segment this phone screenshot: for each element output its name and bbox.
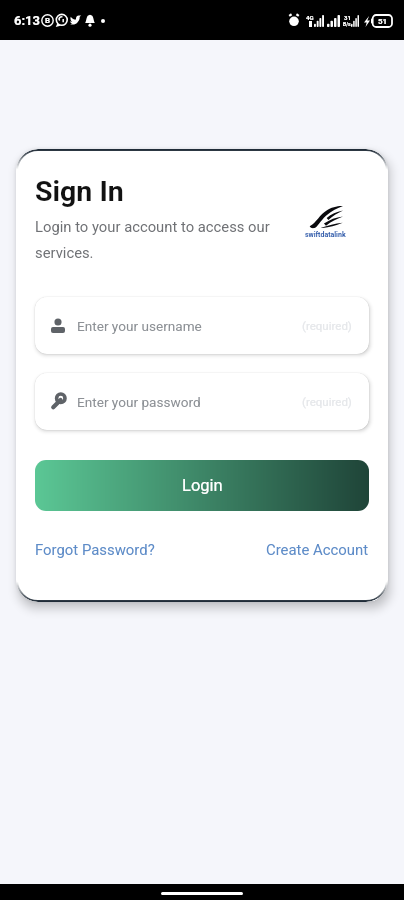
staticText: Enter your username bbox=[77, 318, 202, 334]
staticText: 4G bbox=[306, 14, 314, 21]
button[interactable]: Login bbox=[35, 460, 369, 511]
button[interactable]: Forgot Password? bbox=[35, 541, 155, 558]
staticText: Login bbox=[182, 476, 223, 495]
staticText: 31 bbox=[344, 14, 351, 21]
staticText: (required) bbox=[302, 395, 352, 408]
button[interactable]: Enter your username bbox=[35, 297, 369, 354]
staticText: B/s bbox=[343, 21, 351, 27]
button[interactable]: Create Account bbox=[266, 541, 369, 558]
staticText: Create Account bbox=[266, 541, 369, 558]
staticText: (required) bbox=[302, 319, 352, 332]
staticText: 6:13 bbox=[14, 13, 41, 28]
button[interactable]: Enter your password bbox=[35, 373, 369, 430]
staticText: B bbox=[45, 16, 51, 25]
staticText: Sign In bbox=[35, 175, 124, 208]
staticText: Forgot Password? bbox=[35, 541, 155, 558]
staticText: Enter your password bbox=[77, 394, 201, 410]
staticText: Login to your account to access our serv… bbox=[35, 218, 285, 262]
staticText: swiftdatalink bbox=[305, 231, 346, 239]
staticText: 51 bbox=[378, 17, 388, 26]
